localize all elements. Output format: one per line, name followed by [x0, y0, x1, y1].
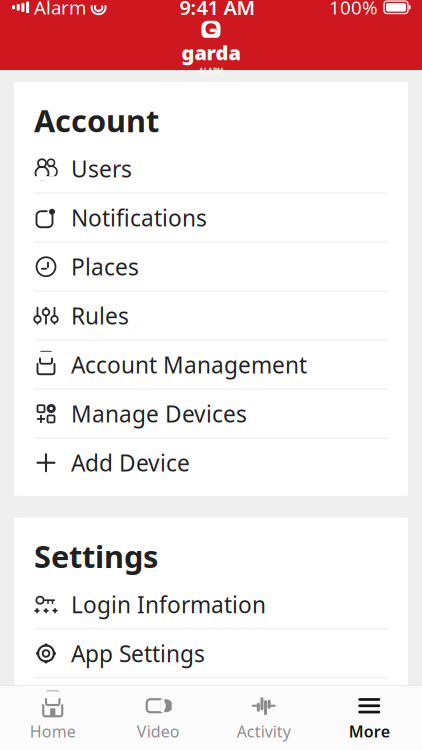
staticText: Places — [71, 252, 139, 282]
button[interactable]: Rules — [14, 292, 408, 341]
staticText: App Settings — [71, 638, 205, 668]
button[interactable]: Places — [14, 243, 408, 292]
staticText: Video — [137, 721, 180, 742]
staticText: 100% — [329, 0, 378, 20]
button[interactable]: Account Management — [14, 341, 408, 390]
button[interactable]: Activity — [211, 686, 316, 750]
staticText: Rules — [71, 301, 129, 331]
staticText: Home — [30, 721, 76, 742]
button[interactable]: App Settings — [14, 629, 408, 678]
staticText: ALARM — [199, 66, 223, 75]
button[interactable]: Login Information — [14, 580, 408, 629]
button[interactable]: Notifications — [14, 194, 408, 243]
staticText: Add Device — [71, 448, 190, 478]
button[interactable]: Video — [105, 686, 211, 750]
staticText: Account Management — [71, 350, 307, 380]
staticText: About — [34, 726, 126, 750]
button[interactable]: Home — [0, 686, 105, 750]
staticText: Notifications — [71, 203, 207, 233]
staticText: Manage Devices — [71, 399, 247, 429]
staticText: garda — [181, 39, 240, 66]
staticText: Login Information — [71, 589, 266, 619]
staticText: More — [349, 721, 390, 742]
button[interactable]: Manage Devices — [14, 390, 408, 439]
staticText: Users — [71, 154, 132, 184]
button[interactable]: More — [316, 686, 422, 750]
staticText: Account — [34, 100, 159, 141]
staticText: 9:41 AM — [180, 0, 256, 21]
button[interactable]: Users — [14, 145, 408, 194]
staticText: Alarm — [34, 0, 86, 20]
button[interactable]: Add Device — [14, 439, 408, 488]
staticText: Settings — [34, 536, 158, 576]
staticText: Activity — [237, 721, 291, 742]
